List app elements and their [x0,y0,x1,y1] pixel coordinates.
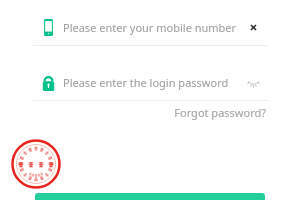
button[interactable]: Show password [238,67,268,97]
staticText: Please enter your mobile number [63,20,238,35]
button[interactable]: Please enter the login password [33,65,268,99]
button[interactable]: Forgot password? [172,103,268,122]
button[interactable]: Login [35,193,265,200]
button[interactable]: Clear mobile number [238,12,268,42]
other: Company seal [11,139,61,189]
staticText: Forgot password? [174,105,266,120]
button[interactable]: Please enter your mobile number [33,10,268,44]
staticText: Please enter the login password [63,75,238,90]
